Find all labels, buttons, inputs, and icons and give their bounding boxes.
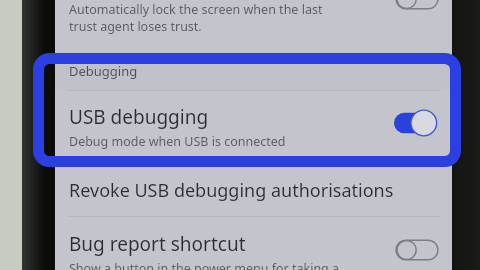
- button[interactable]: Automatic lock toggle, off: [394, 0, 440, 13]
- staticText: Bug report shortcut: [69, 231, 246, 257]
- staticText: Automatically lock the screen when the l…: [69, 1, 323, 18]
- button[interactable]: Bug report shortcut toggle, off: [394, 236, 440, 264]
- staticText: Debugging: [69, 62, 138, 80]
- staticText: trust agent loses trust.: [69, 18, 202, 35]
- staticText: USB debugging: [69, 104, 209, 130]
- staticText: Revoke USB debugging authorisations: [69, 178, 394, 203]
- button[interactable]: USB debugging: [55, 91, 452, 163]
- button[interactable]: Revoke USB debugging authorisations: [55, 164, 452, 216]
- button[interactable]: Bug report shortcut: [55, 217, 452, 270]
- button[interactable]: Automatically lock the screen when the l…: [55, 0, 452, 52]
- staticText: Show a button in the power menu for taki…: [69, 260, 340, 270]
- button[interactable]: USB debugging, on: [392, 109, 438, 137]
- staticText: Debug mode when USB is connected: [69, 133, 286, 150]
